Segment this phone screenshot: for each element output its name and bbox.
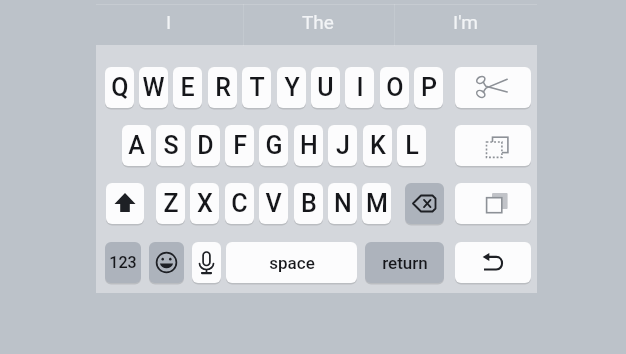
staticText: R	[215, 73, 231, 102]
staticText: D	[197, 131, 214, 160]
button[interactable]: return	[365, 242, 444, 283]
button[interactable]: J	[328, 125, 357, 166]
button[interactable]: D	[191, 125, 220, 166]
staticText: G	[265, 131, 283, 160]
staticText: O	[386, 73, 404, 102]
button[interactable]: Select all	[455, 125, 531, 166]
staticText: The	[302, 11, 334, 33]
staticText: I'm	[453, 11, 478, 33]
button[interactable]: space	[226, 242, 357, 283]
button[interactable]: B	[294, 183, 323, 224]
button[interactable]: Emoji	[149, 242, 184, 283]
staticText: B	[301, 189, 317, 218]
button[interactable]: S	[156, 125, 185, 166]
button[interactable]: L	[397, 125, 426, 166]
staticText: J	[336, 131, 350, 160]
button[interactable]: Undo	[455, 242, 531, 283]
button[interactable]: H	[294, 125, 323, 166]
button[interactable]: M	[362, 183, 391, 224]
button[interactable]: Voice input	[192, 242, 221, 283]
staticText: Z	[163, 189, 179, 218]
button[interactable]: Q	[105, 67, 134, 108]
staticText: return	[382, 253, 428, 273]
button[interactable]: P	[414, 67, 443, 108]
staticText: E	[180, 73, 195, 102]
staticText: K	[370, 131, 386, 160]
button[interactable]: K	[363, 125, 392, 166]
button[interactable]: X	[190, 183, 219, 224]
button[interactable]: A	[122, 125, 151, 166]
button[interactable]: F	[225, 125, 254, 166]
staticText: U	[317, 73, 334, 102]
button[interactable]: The	[242, 0, 393, 45]
button[interactable]: O	[380, 67, 409, 108]
button[interactable]: W	[139, 67, 168, 108]
staticText: Y	[284, 73, 300, 102]
staticText: W	[142, 73, 165, 102]
button[interactable]: T	[242, 67, 271, 108]
button[interactable]: V	[259, 183, 288, 224]
staticText: M	[366, 189, 388, 218]
staticText: F	[233, 131, 247, 160]
staticText: space	[269, 253, 315, 273]
staticText: C	[231, 189, 248, 218]
staticText: L	[405, 131, 419, 160]
staticText: N	[334, 189, 352, 218]
staticText: I	[356, 73, 364, 102]
button[interactable]: Cut	[455, 67, 531, 108]
staticText: T	[249, 73, 265, 102]
staticText: I	[166, 11, 172, 33]
button[interactable]: R	[208, 67, 237, 108]
button[interactable]: E	[173, 67, 202, 108]
button[interactable]: C	[225, 183, 254, 224]
button[interactable]: G	[259, 125, 288, 166]
button[interactable]: 123	[105, 242, 141, 283]
staticText: V	[265, 189, 282, 218]
staticText: 123	[109, 253, 137, 272]
button[interactable]: Shift	[106, 183, 144, 224]
staticText: Q	[111, 73, 129, 102]
staticText: H	[300, 131, 318, 160]
button[interactable]: Y	[277, 67, 306, 108]
staticText: A	[128, 131, 145, 160]
button[interactable]: Backspace	[405, 183, 444, 224]
button[interactable]: Copy	[455, 183, 531, 224]
staticText: P	[421, 73, 437, 102]
staticText: X	[197, 189, 213, 218]
button[interactable]: U	[311, 67, 340, 108]
staticText: S	[163, 131, 179, 160]
button[interactable]: I	[345, 67, 374, 108]
button[interactable]: Z	[156, 183, 185, 224]
button[interactable]: I	[96, 0, 242, 45]
button[interactable]: N	[328, 183, 357, 224]
button[interactable]: I'm	[393, 0, 537, 45]
